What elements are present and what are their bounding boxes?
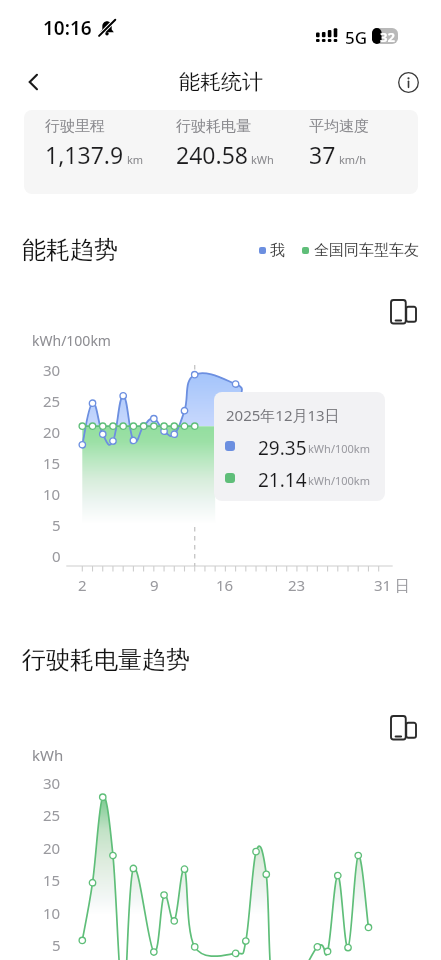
staticText: 10 xyxy=(43,903,61,923)
staticText: kWh xyxy=(32,745,64,765)
button[interactable]: Rotate screen xyxy=(384,709,422,747)
staticText: kWh/100km xyxy=(32,331,111,350)
staticText: km xyxy=(127,152,144,167)
staticText: 29.35 xyxy=(258,435,307,457)
staticText: 32 xyxy=(380,28,395,44)
staticText: 31 日 xyxy=(374,575,411,595)
staticText: 平均速度 xyxy=(309,117,369,136)
staticText: 能耗统计 xyxy=(179,69,263,95)
staticText: 5 xyxy=(52,515,61,535)
staticText: 行驶耗电量趋势 xyxy=(22,645,190,675)
staticText: 10 xyxy=(43,484,61,504)
button[interactable]: Info xyxy=(387,61,429,103)
staticText: kWh/100km xyxy=(308,473,371,488)
staticText: 能耗趋势 xyxy=(22,235,118,265)
staticText: 25 xyxy=(43,391,61,411)
staticText: 行驶耗电量 xyxy=(176,117,251,136)
staticText: 我 xyxy=(270,241,285,260)
staticText: 5 xyxy=(52,935,61,955)
button[interactable]: Rotate screen xyxy=(384,293,422,331)
staticText: 行驶里程 xyxy=(45,117,105,136)
staticText: 0 xyxy=(52,546,61,566)
staticText: 15 xyxy=(43,870,61,890)
staticText: 2025年12月13日 xyxy=(226,405,340,425)
staticText: 2 xyxy=(78,575,87,595)
staticText: km/h xyxy=(339,152,367,167)
staticText: kWh/100km xyxy=(308,441,371,456)
staticText: 23 xyxy=(288,575,306,595)
staticText: kWh xyxy=(251,152,274,167)
staticText: 1,137.9 xyxy=(45,139,124,170)
staticText: 9 xyxy=(150,575,159,595)
staticText: 25 xyxy=(43,805,61,825)
staticText: 240.58 xyxy=(176,139,248,170)
staticText: 20 xyxy=(43,422,61,442)
staticText: 5G xyxy=(345,26,368,49)
staticText: 21.14 xyxy=(258,467,307,489)
staticText: 20 xyxy=(43,838,61,858)
button[interactable]: Back xyxy=(12,61,54,103)
staticText: 37 xyxy=(309,139,336,170)
staticText: 30 xyxy=(43,773,61,793)
staticText: 15 xyxy=(43,453,61,473)
staticText: 30 xyxy=(43,360,61,380)
staticText: 全国同车型车友 xyxy=(314,241,419,260)
staticText: 10:16 xyxy=(43,15,92,41)
staticText: 16 xyxy=(216,575,234,595)
